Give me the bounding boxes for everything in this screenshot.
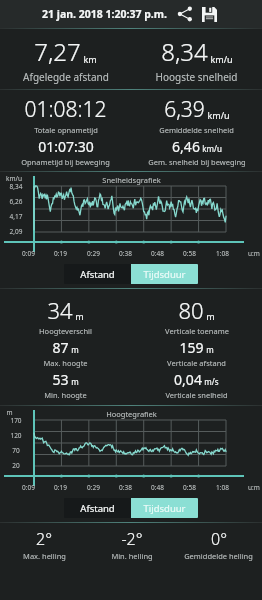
staticText: m <box>71 376 79 387</box>
staticText: 0:19 <box>54 249 67 258</box>
staticText: 0:19 <box>54 483 67 492</box>
staticText: 80 <box>178 295 204 325</box>
button[interactable]: Share <box>174 3 196 25</box>
staticText: 170 <box>2 416 30 425</box>
staticText: 0:09 <box>22 249 35 258</box>
staticText: Tijdsduur <box>143 502 186 515</box>
staticText: m <box>206 310 215 322</box>
staticText: 8,34 <box>2 182 30 191</box>
staticText: 159 <box>179 338 204 357</box>
staticText: Afstand <box>80 502 115 515</box>
staticText: 0:48 <box>151 483 164 492</box>
staticText: Gem. snelheid bij beweging <box>148 157 246 167</box>
staticText: m <box>206 344 214 355</box>
staticText: 120 <box>2 431 30 440</box>
staticText: km/u <box>6 174 22 183</box>
staticText: 01:07:30 <box>38 137 94 156</box>
staticText: 8,34 <box>161 35 208 68</box>
staticText: 87 <box>52 338 69 357</box>
staticText: Max. hoogte <box>43 358 88 368</box>
button[interactable]: Afstand <box>64 498 131 518</box>
staticText: 34 <box>47 295 73 325</box>
staticText: 2° <box>36 528 52 550</box>
staticText: 6,26 <box>2 197 30 206</box>
staticText: Hoogste snelheid <box>155 70 238 84</box>
staticText: Afgelegde afstand <box>23 70 109 84</box>
staticText: 01:08:12 <box>24 95 107 124</box>
button[interactable]: Save <box>198 3 220 25</box>
staticText: Min. helling <box>111 551 153 561</box>
staticText: km/u <box>210 53 233 65</box>
staticText: 0:29 <box>87 483 100 492</box>
staticText: Gemiddelde snelheid <box>159 125 234 135</box>
staticText: 7,27 <box>34 35 81 68</box>
staticText: 20 <box>2 461 30 470</box>
staticText: m <box>71 344 79 355</box>
staticText: 53 <box>52 370 69 389</box>
staticText: 1:08 <box>216 483 229 492</box>
staticText: 6,46 <box>172 137 200 156</box>
staticText: m <box>6 408 13 417</box>
button[interactable]: Afstand <box>64 264 131 284</box>
staticText: km/u <box>207 109 230 121</box>
staticText: 0:29 <box>87 249 100 258</box>
staticText: km/u <box>202 143 222 154</box>
staticText: Snelheidsgrafiek <box>102 175 161 185</box>
staticText: Opnametijd bij beweging <box>21 157 110 167</box>
staticText: 6,39 <box>164 95 205 124</box>
staticText: Max. helling <box>23 551 66 561</box>
staticText: Verticale snelheid <box>165 390 228 400</box>
staticText: Verticale afstand <box>167 358 226 368</box>
staticText: u:m <box>248 249 260 258</box>
staticText: -2° <box>121 528 143 550</box>
staticText: Verticale toename <box>165 326 229 336</box>
staticText: 1:08 <box>216 249 229 258</box>
staticText: Min. hoogte <box>44 390 87 400</box>
staticText: 0° <box>211 528 227 550</box>
staticText: 2,09 <box>2 227 30 236</box>
staticText: 0:58 <box>183 249 196 258</box>
button[interactable]: Tijdsduur <box>131 498 198 518</box>
staticText: Afstand <box>80 268 115 281</box>
staticText: 21 jan. 2018 1:20:37 p.m. <box>42 7 167 21</box>
staticText: 0:38 <box>119 483 132 492</box>
staticText: 0:48 <box>151 249 164 258</box>
staticText: Totale opnametijd <box>34 125 98 135</box>
staticText: 0:58 <box>183 483 196 492</box>
staticText: 0,04 <box>174 370 202 389</box>
staticText: u:m <box>248 483 260 492</box>
staticText: Hoogtegrafiek <box>106 409 157 419</box>
staticText: Gemiddelde helling <box>184 551 253 561</box>
staticText: 0:38 <box>119 249 132 258</box>
staticText: km <box>83 53 97 65</box>
staticText: 0:09 <box>22 483 35 492</box>
button[interactable]: Tijdsduur <box>131 264 198 284</box>
staticText: m/s <box>204 376 219 387</box>
staticText: Tijdsduur <box>143 268 186 281</box>
staticText: Hoogteverschil <box>39 326 92 336</box>
staticText: 4,17 <box>2 212 30 221</box>
staticText: m <box>75 310 84 322</box>
staticText: 70 <box>2 446 30 455</box>
